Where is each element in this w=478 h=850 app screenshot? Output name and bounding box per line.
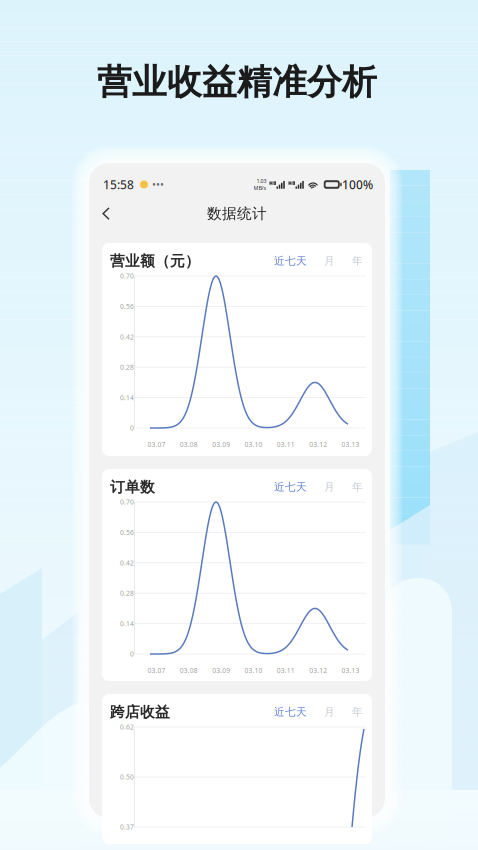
staticText: 月 (324, 254, 335, 268)
staticText: 03.10 (244, 440, 262, 449)
button[interactable]: 近七天 (272, 705, 309, 719)
staticText: 近七天 (274, 254, 307, 268)
staticText: 跨店收益 (110, 703, 170, 721)
staticText: 0.42 (120, 332, 134, 341)
staticText: 03.12 (309, 440, 327, 449)
staticText: 100% (342, 176, 373, 192)
staticText: 0.28 (120, 363, 134, 372)
staticText: 年 (352, 254, 363, 268)
staticText: 近七天 (274, 705, 307, 719)
staticText: 03.10 (244, 666, 262, 675)
button[interactable]: 年 (337, 705, 365, 719)
staticText: 03.11 (277, 666, 295, 675)
staticText: 年 (352, 480, 363, 494)
button[interactable]: 年 (337, 254, 365, 268)
staticText: 1.03 (256, 177, 266, 184)
staticText: 营业收益精准分析 (97, 61, 377, 104)
button[interactable]: 返回 (95, 201, 117, 226)
staticText: 0.50 (120, 773, 134, 781)
staticText: 03.09 (212, 666, 230, 675)
staticText: 0 (130, 650, 134, 658)
staticText: 15:58 (103, 176, 134, 192)
staticText: 月 (324, 705, 335, 719)
staticText: 03.11 (277, 440, 295, 449)
staticText: 0.42 (120, 558, 134, 567)
staticText: 03.08 (180, 666, 198, 675)
button[interactable]: 年 (337, 480, 365, 494)
staticText: 近七天 (274, 480, 307, 494)
staticText: 03.13 (341, 440, 359, 449)
staticText: 0.56 (120, 302, 134, 311)
staticText: 年 (352, 705, 363, 719)
staticText: 0.70 (120, 498, 134, 506)
staticText: 0 (130, 424, 134, 432)
button[interactable]: 月 (309, 480, 337, 494)
staticText: 订单数 (110, 478, 155, 496)
staticText: 0.14 (120, 619, 134, 628)
staticText: 0.28 (120, 589, 134, 598)
staticText: 0.62 (120, 723, 134, 731)
button[interactable]: 近七天 (272, 254, 309, 268)
staticText: 03.12 (309, 666, 327, 675)
staticText: ••• (152, 177, 164, 192)
staticText: 月 (324, 480, 335, 494)
button[interactable]: 月 (309, 254, 337, 268)
staticText: 03.07 (147, 666, 165, 675)
button[interactable]: 月 (309, 705, 337, 719)
staticText: 数据统计 (207, 204, 267, 222)
staticText: 营业额（元） (110, 252, 200, 270)
staticText: MB/s (253, 184, 266, 192)
staticText: 0.70 (120, 272, 134, 280)
staticText: 03.08 (180, 440, 198, 449)
staticText: 03.07 (147, 440, 165, 449)
staticText: 0.37 (120, 823, 134, 831)
staticText: 03.09 (212, 440, 230, 449)
staticText: 0.14 (120, 393, 134, 402)
button[interactable]: 近七天 (272, 480, 309, 494)
staticText: 03.13 (341, 666, 359, 675)
staticText: 0.56 (120, 528, 134, 537)
